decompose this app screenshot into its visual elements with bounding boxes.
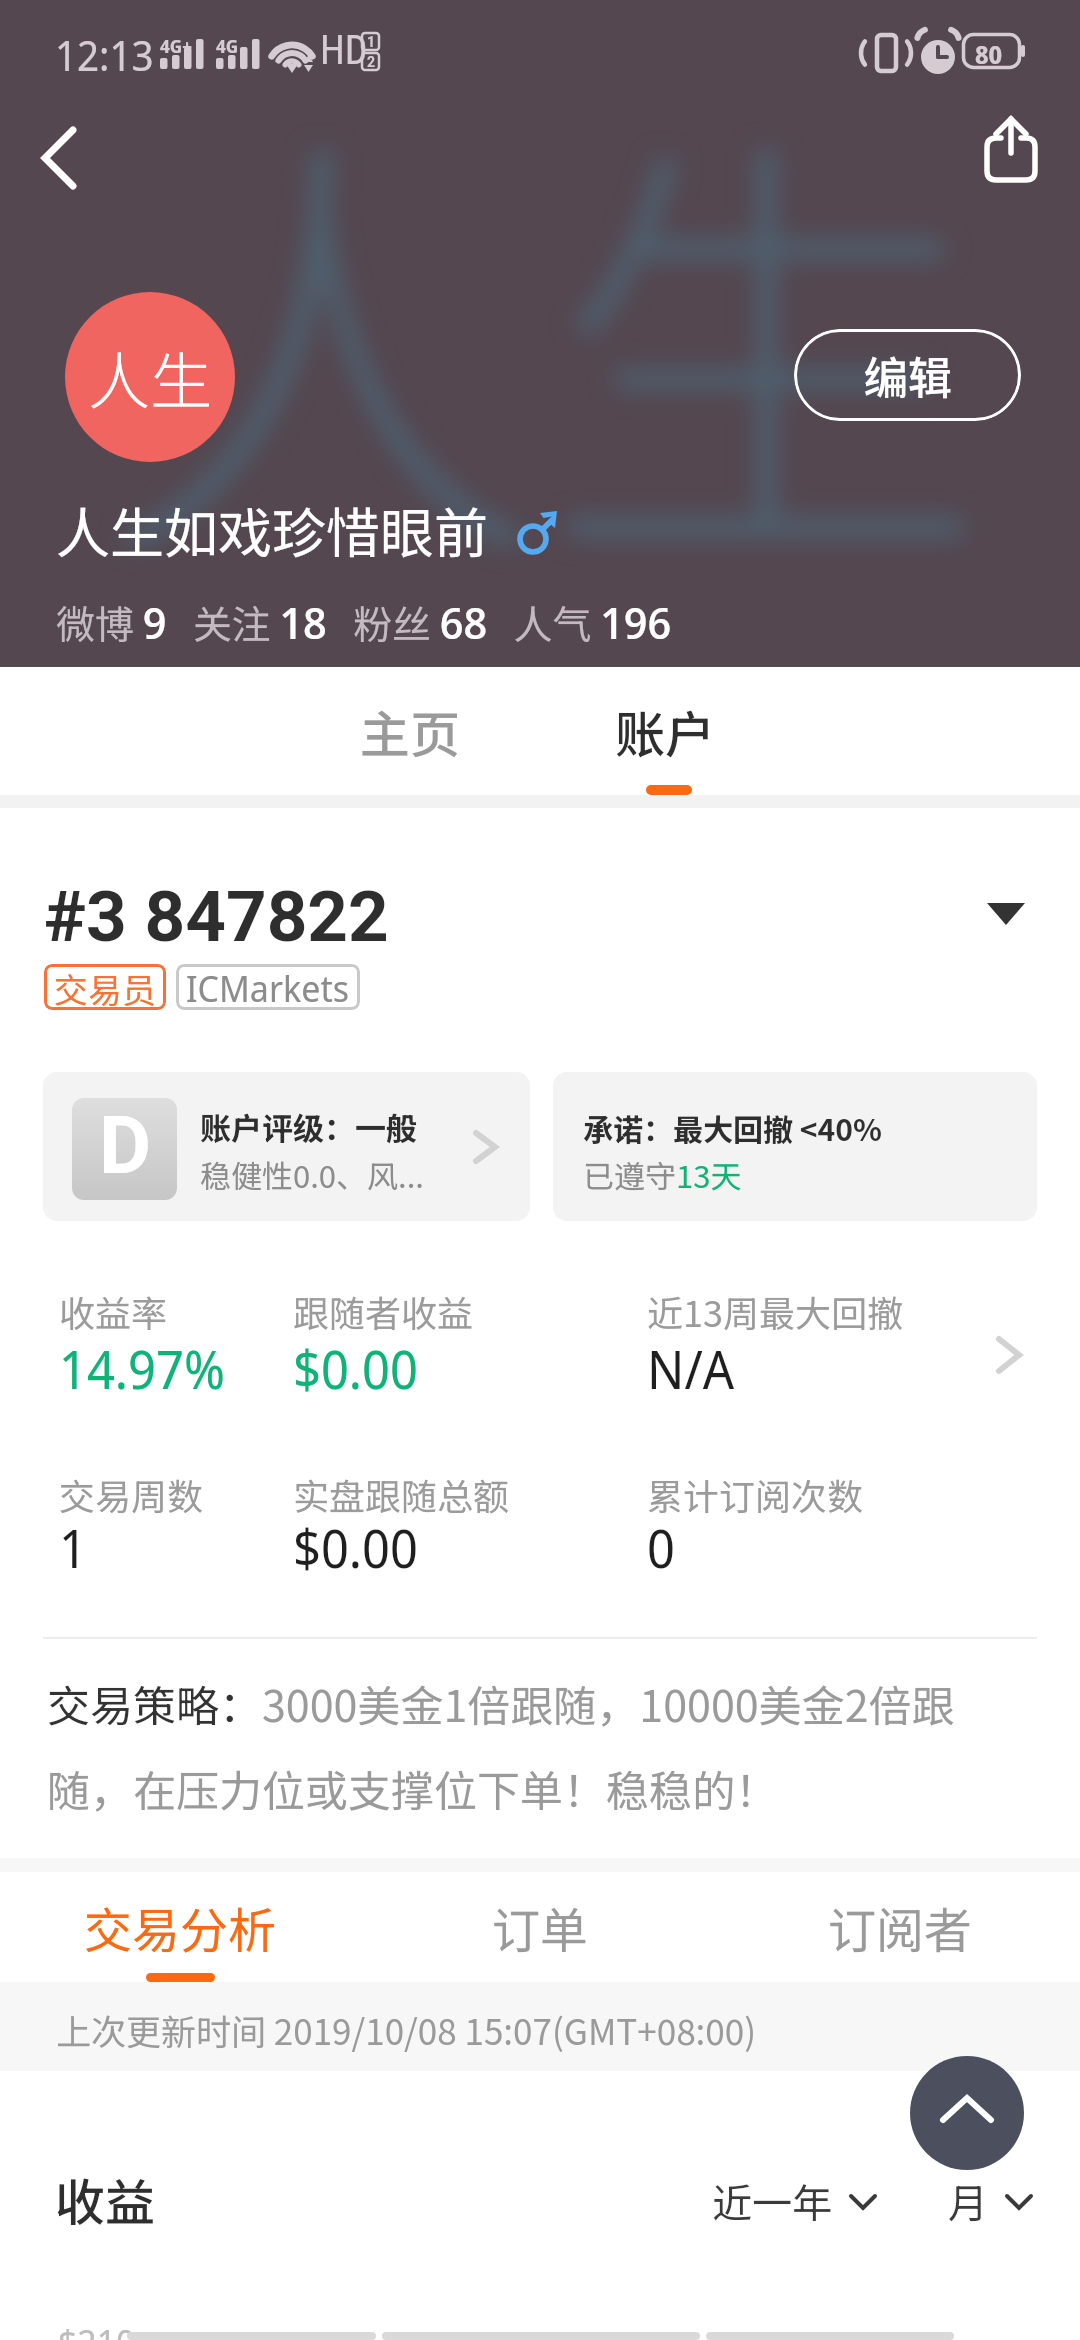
- staticText: 月: [948, 2172, 988, 2230]
- staticText: 已遵守13天: [583, 1152, 742, 1197]
- button[interactable]: Share: [963, 106, 1059, 202]
- staticText: 人生: [98, 4, 988, 648]
- button[interactable]: 账户: [545, 667, 785, 795]
- button[interactable]: 人生: [65, 292, 235, 462]
- button[interactable]: 订单: [360, 1872, 720, 1982]
- staticText: 14.97%: [59, 1333, 225, 1404]
- staticText: 交易分析: [84, 1892, 277, 1962]
- button[interactable]: 近一年: [712, 2172, 880, 2230]
- staticText: 1: [59, 1512, 87, 1583]
- staticText: 80: [975, 37, 1003, 71]
- staticText: 主页: [360, 695, 460, 767]
- staticText: 承诺：最大回撤 <40%: [583, 1106, 882, 1149]
- staticText: 人生: [88, 332, 213, 422]
- staticText: 近13周最大回撤: [647, 1285, 903, 1337]
- button[interactable]: D: [43, 1072, 530, 1221]
- staticText: 近一年: [712, 2172, 832, 2230]
- button[interactable]: 主页: [290, 667, 530, 795]
- button[interactable]: 月: [948, 2172, 1036, 2230]
- button[interactable]: Back: [14, 112, 106, 204]
- staticText: 账户评级：一般: [200, 1104, 417, 1149]
- staticText: 1: [367, 34, 376, 50]
- staticText: 交易员: [54, 964, 156, 1010]
- staticText: ICMarkets: [186, 964, 350, 1010]
- staticText: 0: [647, 1512, 675, 1583]
- staticText: 交易周数: [59, 1468, 204, 1520]
- staticText: 微博 9 关注 18 粉丝 68 人气 196: [56, 592, 672, 652]
- staticText: 4G+: [160, 34, 192, 59]
- staticText: $0.00: [293, 1512, 418, 1583]
- staticText: 订阅者: [828, 1892, 973, 1962]
- staticText: 2: [367, 54, 376, 70]
- button[interactable]: 订阅者: [720, 1872, 1080, 1982]
- staticText: 编辑: [864, 343, 952, 407]
- button[interactable]: Scroll to top: [910, 2056, 1024, 2170]
- staticText: $210: [58, 2318, 136, 2340]
- staticText: 4G: [216, 34, 239, 59]
- button[interactable]: 承诺：最大回撤 <40%: [553, 1072, 1037, 1221]
- staticText: 12:13: [55, 27, 154, 83]
- staticText: 收益率: [59, 1285, 168, 1337]
- staticText: N/A: [647, 1333, 735, 1404]
- staticText: 人生如戏珍惜眼前: [56, 490, 488, 568]
- staticText: 跟随者收益: [293, 1285, 474, 1337]
- staticText: 稳健性0.0、风...: [200, 1152, 424, 1197]
- button[interactable]: ICMarkets: [176, 964, 360, 1010]
- staticText: 订单: [492, 1892, 589, 1962]
- button[interactable]: 交易分析: [0, 1872, 360, 1982]
- staticText: 累计订阅次数: [647, 1468, 864, 1520]
- button[interactable]: Select account: [975, 884, 1037, 946]
- staticText: 收益: [55, 2163, 155, 2235]
- button[interactable]: 编辑: [794, 329, 1021, 421]
- staticText: 交易策略：3000美金1倍跟随，10000美金2倍跟随，在压力位或支撑位下单！稳…: [47, 1672, 1007, 1819]
- staticText: 实盘跟随总额: [293, 1468, 510, 1520]
- staticText: $0.00: [293, 1333, 418, 1404]
- staticText: 账户: [615, 695, 715, 767]
- button[interactable]: 交易员: [44, 964, 166, 1010]
- staticText: D: [99, 1099, 151, 1193]
- staticText: #3 847822: [44, 875, 389, 958]
- staticText: 上次更新时间 2019/10/08 15:07(GMT+08:00): [56, 2004, 756, 2055]
- staticText: HD: [320, 27, 368, 74]
